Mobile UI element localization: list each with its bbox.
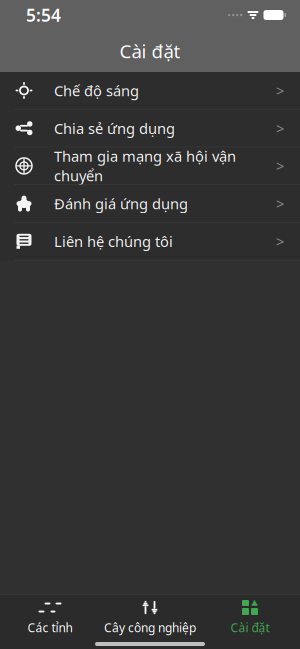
staticText: Đánh giá ứng dụng [54, 194, 188, 213]
staticText: 5:54 [26, 3, 61, 26]
staticText: Chế độ sáng [54, 81, 139, 100]
button[interactable]: Tham gia mạng xã hội vận chuyển [0, 147, 300, 185]
staticText: Tham gia mạng xã hội vận chuyển [54, 146, 236, 185]
staticText: Các tỉnh [27, 619, 72, 635]
button[interactable]: Đánh giá ứng dụng [0, 185, 300, 223]
button[interactable]: Cài đặt [200, 595, 300, 639]
staticText: Cây công nghiệp [104, 619, 196, 635]
staticText: > [276, 232, 284, 251]
staticText: Chia sẻ ứng dụng [54, 118, 175, 138]
staticText: > [276, 81, 284, 100]
staticText: > [276, 118, 284, 138]
staticText: Cài đặt [119, 39, 180, 63]
button[interactable]: Cây công nghiệp [100, 595, 200, 639]
button[interactable]: Chia sẻ ứng dụng [0, 110, 300, 147]
button[interactable]: Chế độ sáng [0, 72, 300, 110]
staticText: > [276, 194, 284, 213]
staticText: > [276, 156, 284, 176]
button[interactable]: Các tỉnh [0, 595, 100, 639]
button[interactable]: Liên hệ chúng tôi [0, 223, 300, 260]
staticText: Liên hệ chúng tôi [54, 232, 173, 251]
staticText: Cài đặt [230, 619, 269, 635]
